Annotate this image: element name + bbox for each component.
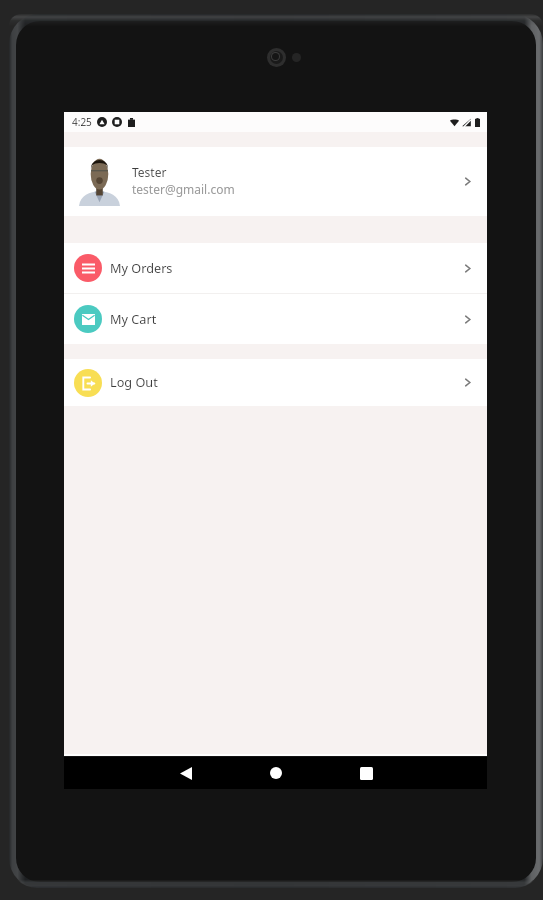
staticText: 4:25 bbox=[72, 115, 92, 129]
staticText: My Cart bbox=[110, 310, 157, 327]
staticText: Log Out bbox=[110, 373, 158, 390]
button[interactable]: Tester bbox=[64, 147, 487, 216]
button[interactable]: Back bbox=[158, 757, 214, 789]
staticText: Tester bbox=[132, 164, 167, 180]
button[interactable]: Log Out bbox=[64, 359, 487, 406]
button[interactable]: Home bbox=[248, 757, 304, 789]
button[interactable]: Recents bbox=[338, 757, 394, 789]
button[interactable]: My Orders bbox=[64, 243, 487, 293]
button[interactable]: My Cart bbox=[64, 294, 487, 344]
staticText: tester@gmail.com bbox=[132, 181, 235, 197]
staticText: My Orders bbox=[110, 259, 173, 276]
